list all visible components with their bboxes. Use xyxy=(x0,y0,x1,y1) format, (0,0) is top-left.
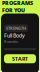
staticText: Full Body xyxy=(4,32,25,39)
staticText: START xyxy=(12,55,28,62)
staticText: 8 weeks xyxy=(4,39,18,44)
staticText: STRENGTH xyxy=(6,25,26,31)
staticText: PROGRAMS xyxy=(2,0,33,7)
button[interactable]: START xyxy=(4,54,36,63)
staticText: FOR YOU xyxy=(2,7,25,14)
